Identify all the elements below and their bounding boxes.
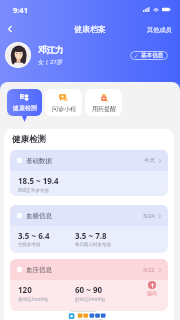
staticText: 女 | 27岁 [38, 58, 63, 66]
staticText: 基础数据 [26, 157, 52, 165]
staticText: 空腹参考值 [18, 242, 41, 248]
staticText: 9:41 [13, 5, 28, 15]
staticText: 18.5 ~ 19.4 [18, 175, 59, 186]
staticText: 3/24 [143, 212, 155, 219]
staticText: 基本信息 [141, 52, 164, 59]
staticText: 3.5 ~ 7.8 [75, 230, 107, 241]
button[interactable]: 基本信息 [130, 51, 168, 60]
staticText: 餐后两小时参考值 [75, 242, 111, 248]
button[interactable] [6, 43, 30, 67]
staticText: 健康检测 [13, 104, 37, 112]
staticText: 用药提醒 [92, 105, 116, 113]
staticText: 4/22 [143, 266, 155, 273]
button[interactable]: 其他成员 [145, 24, 174, 36]
staticText: 3.5 ~ 6.4 [18, 230, 50, 241]
button[interactable]: 用药提醒 [85, 89, 122, 116]
button[interactable]: 问诊小程 [45, 89, 82, 116]
staticText: BMI正常参考值 [18, 187, 50, 193]
button[interactable]: 健康检测 [7, 89, 42, 116]
staticText: 问诊小程 [52, 105, 76, 113]
staticText: 健康检测 [12, 134, 46, 145]
staticText: 血糖信息 [26, 212, 52, 220]
staticText: 收缩压/mmHg [18, 296, 48, 302]
staticText: 偏高 [147, 290, 157, 296]
staticText: 舒张压/mmHg [75, 296, 105, 302]
button[interactable]: 血压信息 [10, 259, 168, 311]
staticText: 血压信息 [26, 266, 52, 274]
staticText: 60 ~ 90 [75, 284, 103, 295]
button[interactable]: 基础数据 [10, 150, 168, 196]
staticText: 今天 [144, 157, 155, 164]
staticText: 邓江力 [38, 45, 64, 56]
button[interactable]: Back [3, 22, 17, 36]
staticText: 120 [18, 284, 32, 295]
button[interactable]: 血糖信息 [10, 205, 168, 253]
staticText: 健康档案 [74, 24, 106, 34]
staticText: 其他成员 [147, 26, 172, 34]
